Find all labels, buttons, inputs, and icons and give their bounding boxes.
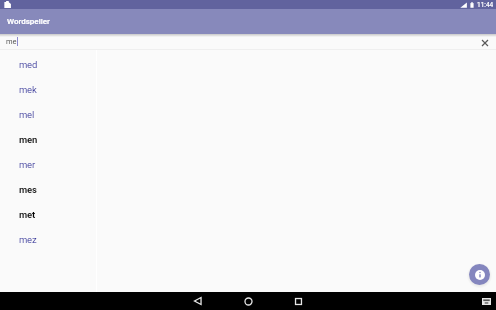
- staticText: mel: [19, 109, 34, 120]
- button[interactable]: Switch keyboard: [479, 294, 493, 308]
- button[interactable]: Info: [469, 264, 490, 285]
- staticText: mer: [19, 159, 35, 170]
- staticText: men: [19, 134, 37, 145]
- button[interactable]: Clear search: [477, 34, 493, 49]
- staticText: Wordspeller: [7, 17, 50, 26]
- staticText: mes: [19, 184, 37, 195]
- button[interactable]: med: [0, 52, 96, 77]
- staticText: med: [19, 59, 37, 70]
- button[interactable]: mek: [0, 77, 96, 102]
- button[interactable]: mel: [0, 102, 96, 127]
- button[interactable]: mer: [0, 152, 96, 177]
- button[interactable]: Recent apps: [289, 292, 307, 310]
- staticText: met: [19, 209, 35, 220]
- staticText: me: [6, 37, 17, 46]
- button[interactable]: mez: [0, 227, 96, 252]
- staticText: mez: [19, 234, 37, 245]
- button[interactable]: Back: [189, 292, 207, 310]
- staticText: 11:44: [477, 1, 494, 9]
- staticText: mek: [19, 84, 37, 95]
- button[interactable]: Home: [239, 292, 257, 310]
- button[interactable]: mes: [0, 177, 96, 202]
- button[interactable]: met: [0, 202, 96, 227]
- button[interactable]: men: [0, 127, 96, 152]
